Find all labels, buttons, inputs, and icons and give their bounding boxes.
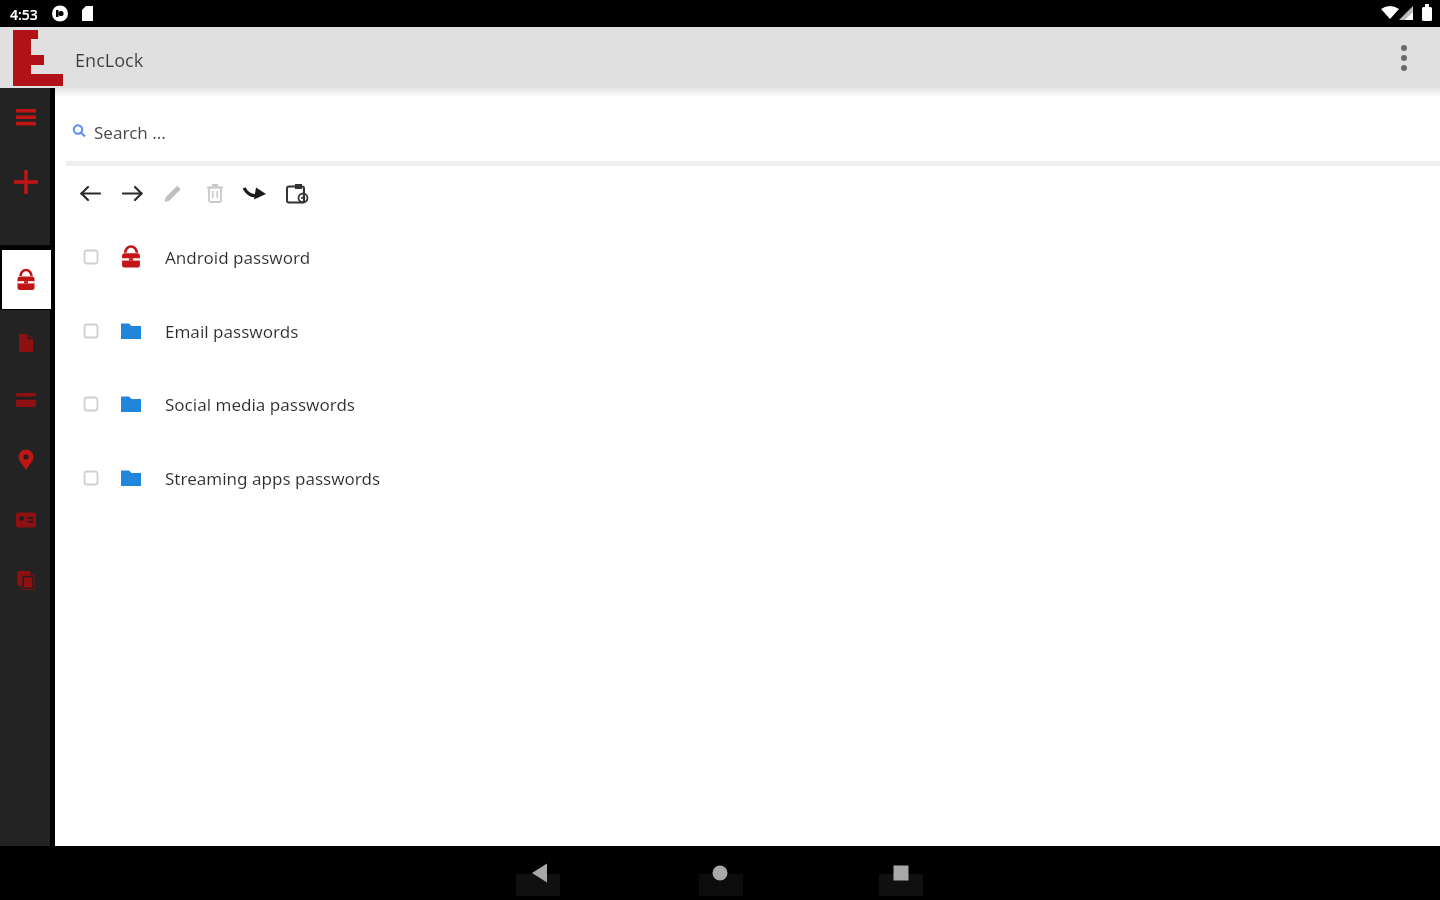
button[interactable] bbox=[0, 493, 52, 552]
button[interactable]: Email passwords bbox=[55, 295, 475, 367]
button[interactable] bbox=[1386, 45, 1422, 81]
button[interactable] bbox=[0, 553, 52, 612]
staticText: 4:53 bbox=[10, 5, 38, 24]
staticText: Search ... bbox=[94, 121, 166, 144]
button[interactable] bbox=[874, 846, 928, 900]
button[interactable]: Social media passwords bbox=[55, 368, 475, 440]
button[interactable]: Search ... bbox=[66, 111, 1429, 151]
button[interactable] bbox=[0, 250, 52, 309]
button[interactable]: Android password bbox=[55, 221, 475, 293]
button[interactable] bbox=[512, 846, 566, 900]
button[interactable] bbox=[0, 102, 52, 134]
staticText: Email passwords bbox=[165, 320, 299, 343]
button[interactable] bbox=[73, 176, 109, 212]
staticText: EncLock bbox=[75, 48, 144, 73]
button[interactable] bbox=[237, 176, 273, 212]
button[interactable] bbox=[278, 176, 314, 212]
button[interactable] bbox=[0, 373, 52, 432]
staticText: Android password bbox=[165, 246, 311, 269]
button[interactable] bbox=[693, 846, 747, 900]
button[interactable] bbox=[0, 166, 52, 198]
button[interactable] bbox=[197, 176, 233, 212]
button[interactable] bbox=[0, 433, 52, 492]
button[interactable] bbox=[0, 313, 52, 372]
button[interactable]: Streaming apps passwords bbox=[55, 442, 475, 514]
button[interactable] bbox=[114, 176, 150, 212]
staticText: Social media passwords bbox=[165, 393, 355, 416]
button[interactable] bbox=[155, 176, 191, 212]
staticText: Streaming apps passwords bbox=[165, 467, 381, 490]
